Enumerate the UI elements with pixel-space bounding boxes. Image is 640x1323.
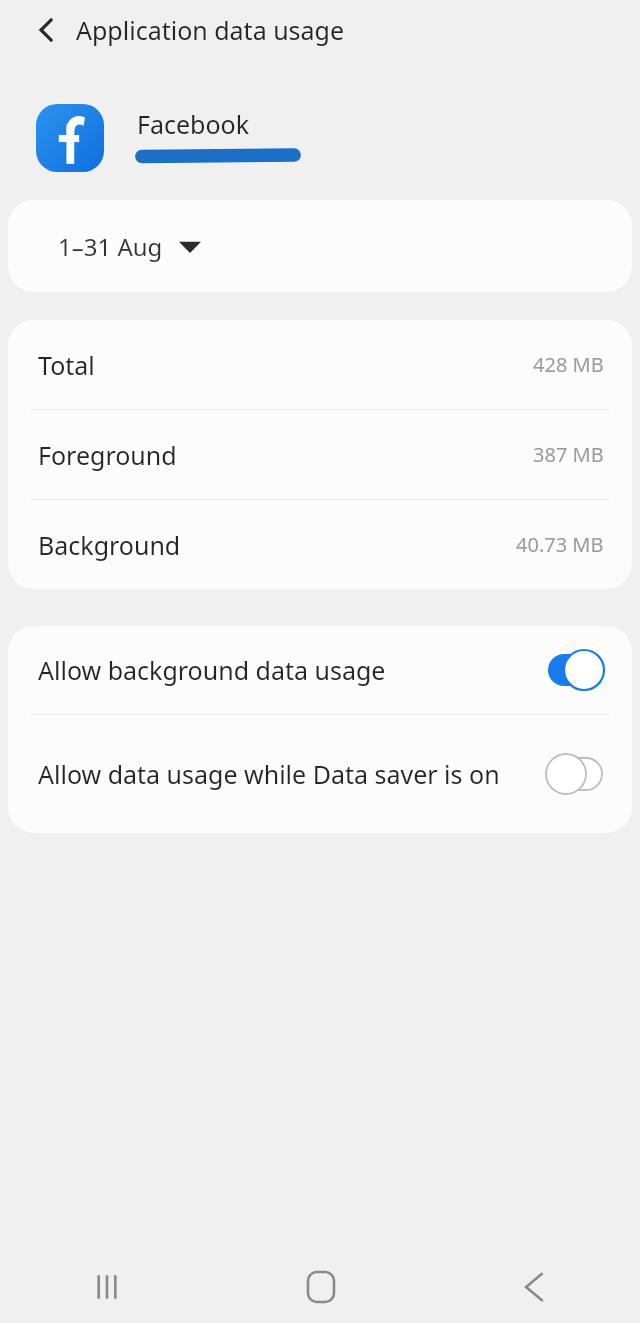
button[interactable]: Allow background data usage	[8, 626, 632, 714]
staticText: Facebook	[137, 107, 250, 141]
button[interactable]: Background	[8, 500, 632, 589]
button[interactable]: Back	[427, 1251, 640, 1323]
staticText: Total	[38, 348, 95, 382]
staticText: 40.73 MB	[516, 531, 604, 558]
staticText: Allow background data usage	[38, 653, 508, 687]
button[interactable]: Foreground	[8, 410, 632, 499]
staticText: 428 MB	[533, 351, 604, 378]
button[interactable]: Back	[22, 5, 72, 55]
staticText: Application data usage	[76, 13, 345, 47]
button[interactable]: Total	[8, 320, 632, 409]
button[interactable]: Recent apps	[0, 1251, 214, 1323]
staticText: Foreground	[38, 438, 177, 472]
staticText: 1–31 Aug	[58, 230, 163, 263]
button[interactable]: Allow data usage while Data saver is on	[8, 715, 632, 833]
button[interactable]: 1–31 Aug	[8, 200, 632, 292]
staticText: Allow data usage while Data saver is on	[38, 757, 508, 791]
button[interactable]: Home	[214, 1251, 427, 1323]
staticText: 387 MB	[533, 441, 604, 468]
staticText: Background	[38, 528, 181, 562]
